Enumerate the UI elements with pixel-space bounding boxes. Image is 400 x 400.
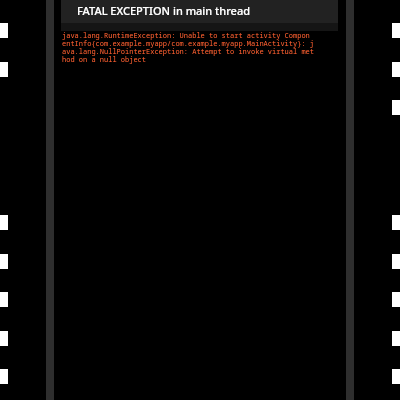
staticText: FATAL EXCEPTION in main thread [77,3,251,18]
button[interactable]: App bar [61,0,338,23]
button[interactable]: java.lang.RuntimeException: Unable to st… [62,31,314,64]
